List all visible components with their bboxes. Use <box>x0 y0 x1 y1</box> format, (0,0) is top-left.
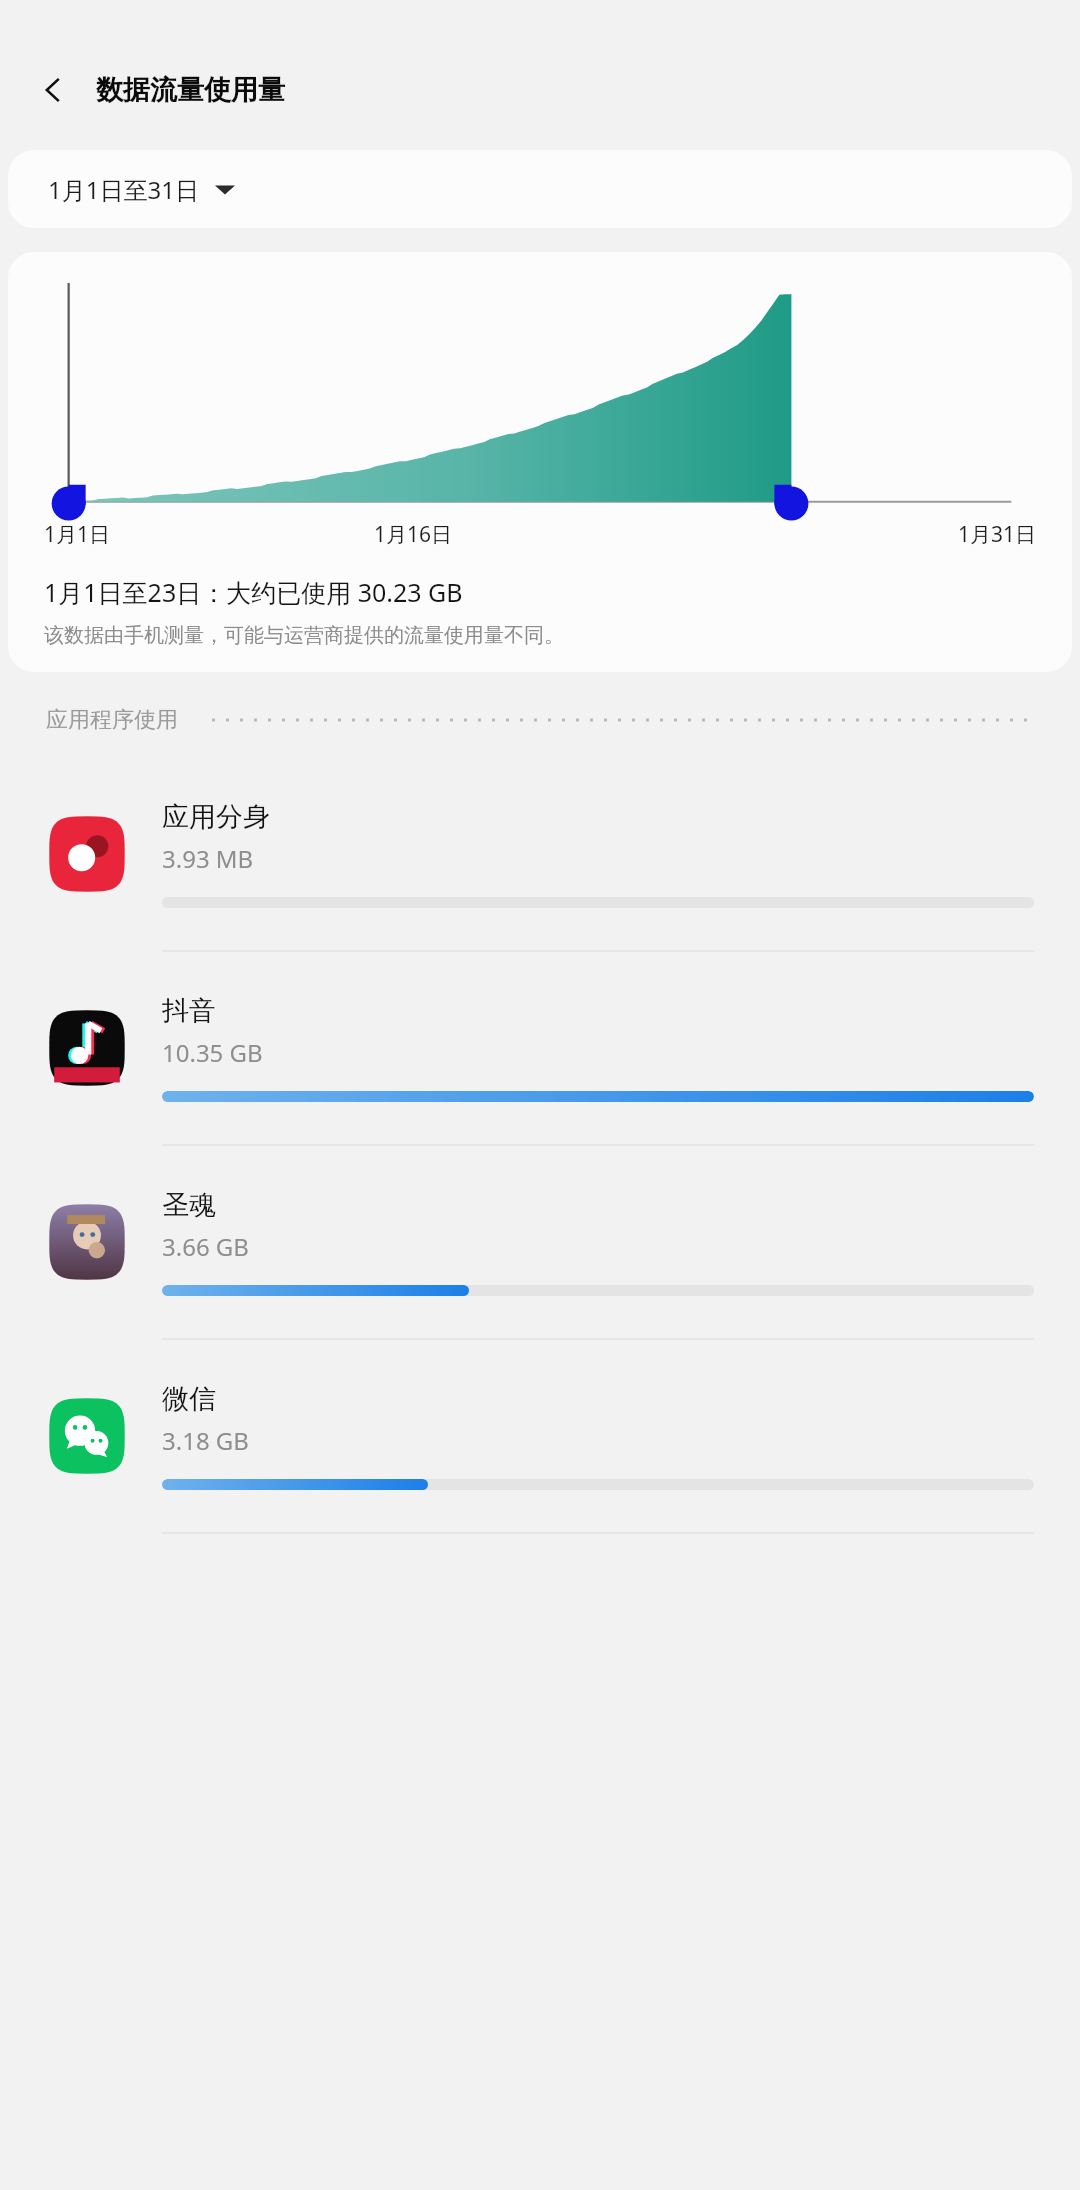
staticText: 数据流量使用量 <box>96 73 285 107</box>
button[interactable]: 抖音 <box>0 952 1080 1144</box>
staticText: 1月31日 <box>705 520 1036 549</box>
staticText: 该数据由手机测量，可能与运营商提供的流量使用量不同。 <box>44 623 564 648</box>
staticText: 3.93 MB <box>162 842 254 875</box>
staticText: 3.66 GB <box>162 1230 249 1263</box>
button[interactable]: 微信 <box>0 1340 1080 1532</box>
staticText: 1月1日 <box>44 520 374 549</box>
staticText: 圣魂 <box>162 1188 216 1222</box>
staticText: 1月1日至23日：大约已使用 30.23 GB <box>44 575 463 609</box>
staticText: 10.35 GB <box>162 1036 263 1069</box>
staticText: 应用程序使用 <box>46 706 178 734</box>
staticText: 1月16日 <box>374 520 705 549</box>
staticText: 3.18 GB <box>162 1424 249 1457</box>
button[interactable]: 圣魂 <box>0 1146 1080 1338</box>
button[interactable]: Back <box>26 62 82 118</box>
button[interactable]: 1月1日至31日 <box>8 150 1072 228</box>
staticText: 1月1日至31日 <box>48 173 199 206</box>
button[interactable]: 应用分身 <box>0 758 1080 950</box>
staticText: 应用分身 <box>162 800 270 834</box>
staticText: 微信 <box>162 1382 216 1416</box>
staticText: 抖音 <box>162 994 216 1028</box>
